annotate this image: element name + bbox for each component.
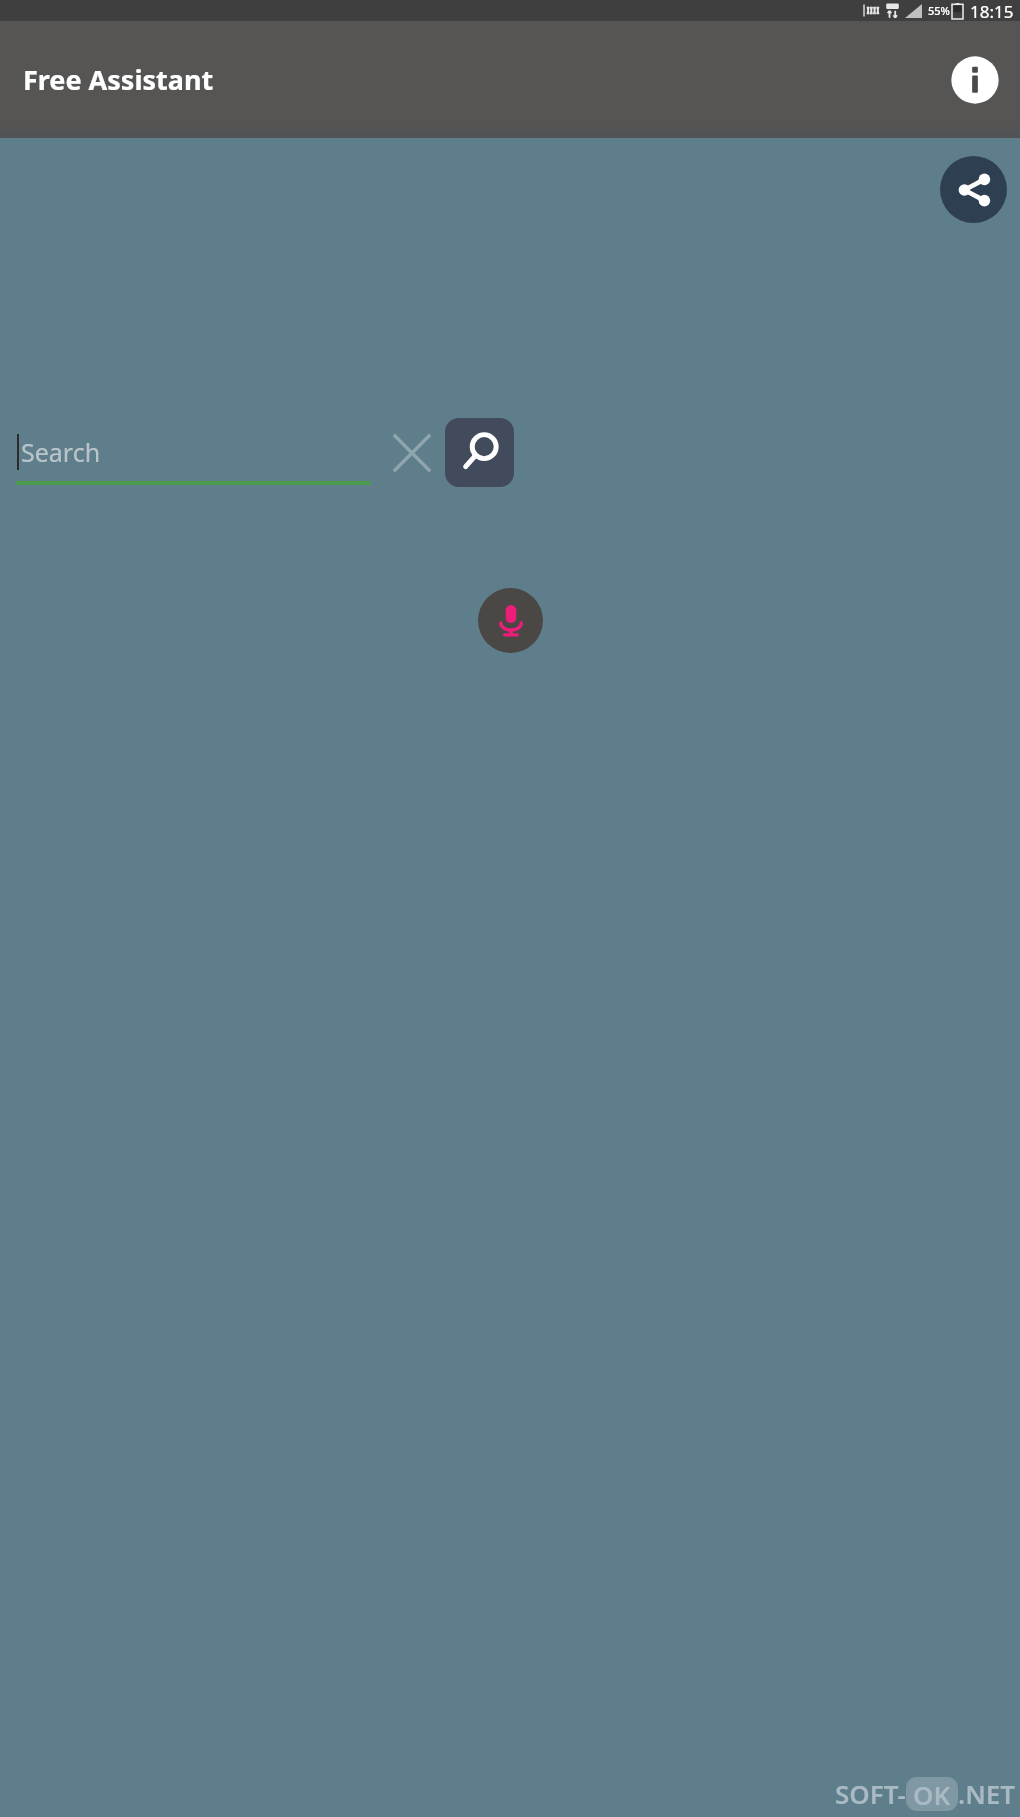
staticText: OK bbox=[913, 1777, 951, 1811]
button[interactable]: Share bbox=[940, 156, 1007, 223]
staticText: 55% bbox=[928, 3, 950, 18]
button[interactable]: Info bbox=[947, 52, 1003, 108]
button[interactable]: Voice input bbox=[478, 588, 543, 653]
button[interactable]: Search bbox=[16, 427, 371, 485]
button[interactable]: Clear bbox=[387, 428, 437, 478]
button[interactable]: Search bbox=[445, 418, 514, 487]
staticText: Search bbox=[21, 435, 101, 469]
staticText: SOFT- bbox=[835, 1776, 906, 1811]
staticText: Free Assistant bbox=[23, 61, 214, 98]
staticText: .NET bbox=[958, 1776, 1016, 1811]
staticText: 18:15 bbox=[970, 0, 1014, 21]
